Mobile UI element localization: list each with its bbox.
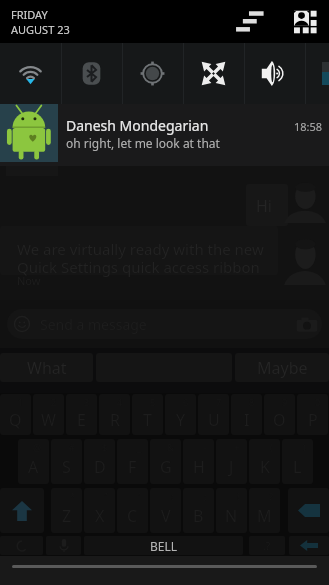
staticText: FRIDAY — [11, 7, 48, 22]
staticText: T — [143, 409, 152, 431]
staticText: E — [77, 409, 86, 431]
staticText: Now — [17, 273, 41, 288]
staticText: W — [41, 409, 56, 431]
button[interactable]: Camera — [294, 314, 320, 336]
button[interactable] — [0, 226, 278, 275]
staticText: AUGUST 23 — [11, 22, 70, 37]
button[interactable]: Volume — [244, 43, 305, 104]
button[interactable]: User and settings — [294, 10, 317, 33]
button[interactable]: Expand — [183, 43, 244, 104]
staticText: Z — [62, 505, 72, 527]
button[interactable]: Expand quick settings — [233, 6, 267, 37]
staticText: oh right, let me look at that — [66, 135, 220, 151]
button[interactable]: Bluetooth — [61, 43, 122, 104]
staticText: BELL — [150, 538, 178, 554]
staticText: We are virtually ready with the new — [17, 239, 264, 259]
button[interactable]: Maybe — [235, 353, 329, 382]
button[interactable]: Wi-Fi — [0, 43, 61, 104]
button[interactable]: Location — [122, 43, 183, 104]
button[interactable]: Shift — [0, 488, 44, 533]
staticText: I — [244, 409, 250, 431]
button[interactable]: Danesh Mondegarian — [0, 104, 329, 166]
button[interactable]: Enter — [289, 536, 329, 555]
staticText: H — [193, 456, 205, 478]
staticText: Danesh Mondegarian — [66, 116, 209, 135]
staticText: Quick Settings quick access ribbon — [17, 257, 260, 277]
staticText: F — [128, 456, 137, 478]
button[interactable]: Space — [84, 536, 243, 555]
button[interactable]: Backspace — [288, 488, 329, 533]
staticText: B — [193, 505, 204, 527]
staticText: What — [27, 357, 67, 379]
